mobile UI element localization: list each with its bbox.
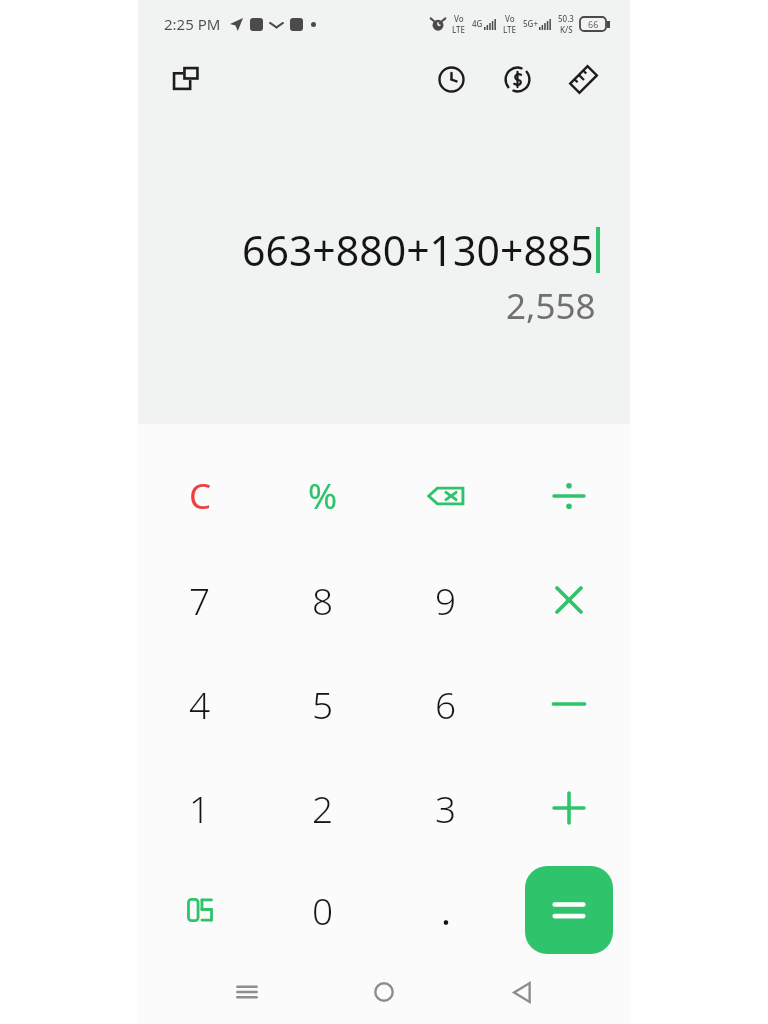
- staticText: C: [189, 472, 212, 520]
- staticText: 1: [189, 783, 211, 833]
- button[interactable]: Recent apps: [218, 963, 276, 1021]
- staticText: Vo: [454, 13, 464, 24]
- staticText: 6: [435, 679, 457, 729]
- button[interactable]: 5: [284, 665, 362, 743]
- button[interactable]: Scientific mode: [161, 871, 239, 949]
- staticText: 4G: [472, 18, 483, 29]
- button[interactable]: Currency converter: [494, 56, 540, 102]
- button[interactable]: History: [428, 56, 474, 102]
- button[interactable]: Home: [355, 963, 413, 1021]
- staticText: 50.3: [558, 13, 574, 24]
- button[interactable]: Back: [493, 963, 551, 1021]
- staticText: Vo: [505, 13, 515, 24]
- button[interactable]: 6: [407, 665, 485, 743]
- staticText: K/S: [560, 24, 573, 35]
- button[interactable]: C: [161, 457, 239, 535]
- button[interactable]: 0: [284, 871, 362, 949]
- button[interactable]: Multiply: [530, 561, 608, 639]
- button[interactable]: 4: [161, 665, 239, 743]
- button[interactable]: %: [284, 457, 362, 535]
- staticText: 5: [312, 679, 334, 729]
- button[interactable]: Floating window: [163, 56, 209, 102]
- staticText: 4: [189, 679, 211, 729]
- button[interactable]: Minus: [530, 665, 608, 743]
- staticText: .: [441, 885, 451, 935]
- staticText: 7: [189, 575, 211, 625]
- button[interactable]: 9: [407, 561, 485, 639]
- staticText: 663+880+130+885: [242, 222, 594, 278]
- button[interactable]: Equals: [525, 866, 613, 954]
- staticText: 9: [435, 575, 457, 625]
- button[interactable]: 7: [161, 561, 239, 639]
- staticText: 0: [312, 885, 334, 935]
- staticText: 66: [588, 18, 599, 30]
- staticText: LTE: [503, 24, 517, 35]
- button[interactable]: 3: [407, 769, 485, 847]
- button[interactable]: .: [407, 871, 485, 949]
- button[interactable]: Unit converter: [560, 56, 606, 102]
- button[interactable]: 2: [284, 769, 362, 847]
- button[interactable]: 8: [284, 561, 362, 639]
- staticText: 2,558: [506, 282, 596, 330]
- button[interactable]: Divide: [530, 457, 608, 535]
- button[interactable]: Backspace: [407, 457, 485, 535]
- staticText: 3: [435, 783, 457, 833]
- staticText: %: [308, 472, 338, 520]
- button[interactable]: 1: [161, 769, 239, 847]
- staticText: 5G+: [523, 18, 538, 29]
- staticText: LTE: [452, 24, 466, 35]
- staticText: 2: [312, 783, 334, 833]
- staticText: 2:25 PM: [164, 14, 221, 34]
- staticText: 8: [312, 575, 334, 625]
- button[interactable]: Plus: [530, 769, 608, 847]
